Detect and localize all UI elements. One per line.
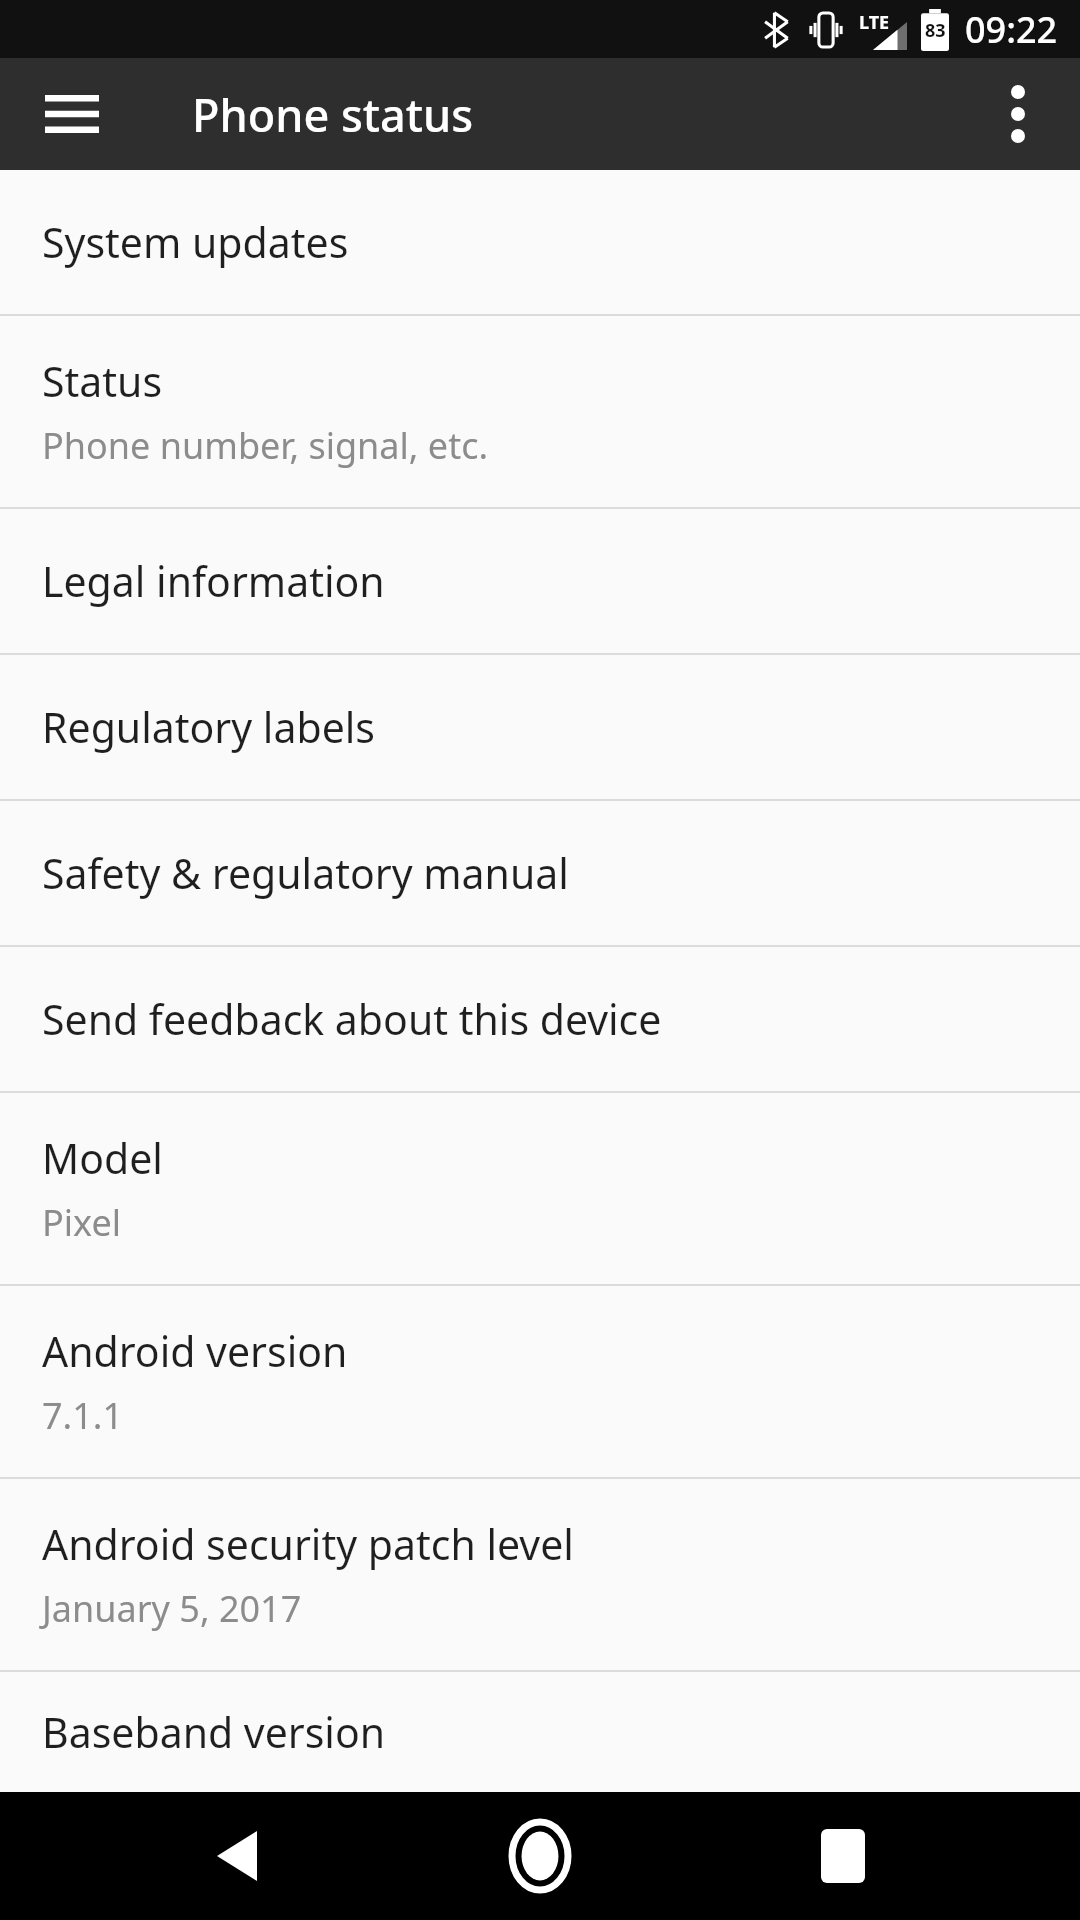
button[interactable]: Legal information — [0, 509, 1080, 653]
staticText: Safety & regulatory manual — [42, 845, 569, 901]
button[interactable]: Android version — [0, 1286, 1080, 1477]
button[interactable]: Send feedback about this device — [0, 947, 1080, 1091]
button[interactable]: Model — [0, 1093, 1080, 1284]
staticText: LTE — [859, 10, 890, 35]
staticText: Model — [42, 1130, 163, 1186]
button[interactable]: Home — [474, 1792, 606, 1920]
staticText: Phone status — [192, 84, 474, 145]
button[interactable]: More options — [964, 60, 1072, 168]
button[interactable]: Android security patch level — [0, 1479, 1080, 1670]
staticText: Regulatory labels — [42, 699, 376, 755]
button[interactable]: Baseband version — [0, 1672, 1080, 1792]
staticText: Legal information — [42, 553, 385, 609]
staticText: 09:22 — [965, 5, 1058, 54]
staticText: January 5, 2017 — [42, 1584, 302, 1633]
staticText: Android security patch level — [42, 1516, 574, 1572]
button[interactable]: Safety & regulatory manual — [0, 801, 1080, 945]
staticText: 83 — [925, 18, 946, 43]
staticText: Android version — [42, 1323, 348, 1379]
button[interactable]: Open navigation drawer — [18, 60, 126, 168]
button[interactable]: Status — [0, 316, 1080, 507]
staticText: Send feedback about this device — [42, 991, 662, 1047]
button[interactable]: System updates — [0, 170, 1080, 314]
button[interactable]: Back — [171, 1792, 303, 1920]
button[interactable]: Regulatory labels — [0, 655, 1080, 799]
staticText: Baseband version — [42, 1704, 386, 1760]
staticText: System updates — [42, 214, 349, 270]
staticText: Pixel — [42, 1198, 121, 1247]
staticText: Status — [42, 353, 163, 409]
staticText: 7.1.1 — [42, 1391, 124, 1440]
staticText: Phone number, signal, etc. — [42, 421, 489, 470]
button[interactable]: Recent apps — [777, 1792, 909, 1920]
